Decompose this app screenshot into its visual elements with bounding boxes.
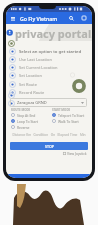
button[interactable]: Use Last Location: [6, 55, 92, 63]
staticText: Record Route: [19, 90, 45, 95]
staticText: Distance Km Condition On Elapsed Time Mi…: [6, 133, 92, 137]
button[interactable]: Loop To Start: [11, 118, 52, 124]
staticText: privacy portal.: [15, 26, 92, 41]
button[interactable]: Reverse: [11, 124, 52, 130]
staticText: Stop At End: [17, 113, 36, 118]
staticText: Use Last Location: [19, 57, 52, 62]
button[interactable]: Switch account: [78, 12, 89, 24]
button[interactable]: STOP: [10, 142, 88, 150]
button[interactable]: Zaragoza GRND: [10, 98, 87, 107]
button[interactable]: Set Location: [6, 71, 92, 79]
staticText: Teleport To Start: [58, 113, 85, 118]
staticText: STOP: [45, 144, 54, 149]
staticText: Zaragoza GRND: [17, 100, 47, 105]
staticText: Set Location: [19, 73, 42, 78]
button[interactable]: Stop At End: [11, 112, 52, 118]
button[interactable]: Teleport To Start: [52, 112, 92, 118]
staticText: START MODE: [52, 108, 71, 112]
staticText: ROUTE MODE: [11, 108, 31, 112]
staticText: Reverse: [17, 125, 30, 130]
button[interactable]: Set Current Location: [6, 63, 92, 71]
staticText: Select an option to get started: [19, 48, 82, 54]
button[interactable]: Search: [66, 12, 77, 24]
button[interactable]: Select an option to get started: [6, 47, 92, 55]
button[interactable]: Walk To Start: [52, 118, 92, 124]
staticText: Walk To Start: [58, 119, 79, 124]
staticText: Set Route: [19, 82, 38, 87]
staticText: Set Current Location: [19, 65, 58, 70]
staticText: View Joystick: [67, 151, 87, 155]
button[interactable]: Navigation menu: [8, 12, 17, 24]
staticText: Go Fly Vietnam: [20, 15, 58, 22]
staticText: Loop To Start: [17, 119, 39, 124]
button[interactable]: Record Route: [6, 88, 92, 96]
button[interactable]: Set Route: [6, 80, 92, 88]
button[interactable]: View Joystick: [63, 151, 87, 155]
